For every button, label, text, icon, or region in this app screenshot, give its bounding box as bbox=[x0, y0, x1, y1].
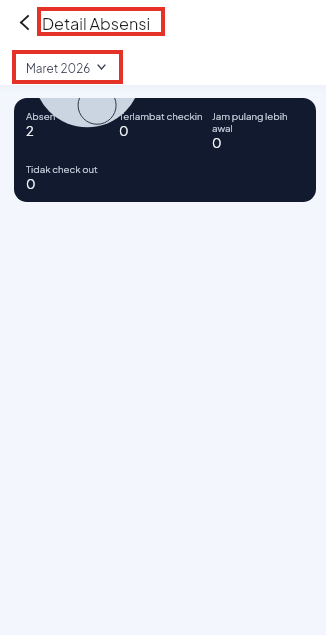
button[interactable]: Maret 2026 bbox=[15, 55, 115, 82]
button[interactable]: Back bbox=[9, 7, 39, 37]
staticText: 0 bbox=[212, 135, 222, 151]
staticText: 0 bbox=[26, 176, 36, 192]
staticText: 2 bbox=[26, 123, 34, 139]
staticText: Detail Absensi bbox=[42, 13, 151, 33]
staticText: Terlambat checkin bbox=[119, 110, 203, 122]
staticText: Maret 2026 bbox=[26, 61, 91, 76]
staticText: Absen bbox=[26, 110, 56, 122]
staticText: Tidak check out bbox=[26, 163, 98, 175]
staticText: 0 bbox=[119, 123, 129, 139]
staticText: Jam pulang lebih awal bbox=[212, 110, 304, 134]
